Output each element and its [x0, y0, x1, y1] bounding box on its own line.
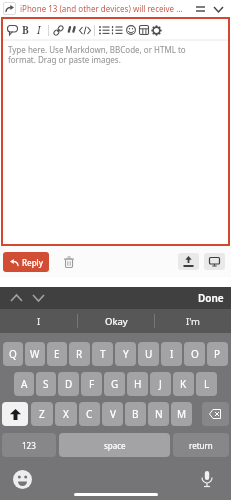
button[interactable]: G — [104, 372, 125, 396]
staticText: U — [145, 347, 153, 361]
staticText: M — [177, 407, 187, 421]
button[interactable]: Reply — [3, 252, 49, 272]
staticText: Type here. Use Markdown, BBCode, or HTML… — [8, 44, 186, 66]
button[interactable]: L — [196, 372, 217, 396]
staticText: F — [89, 377, 95, 391]
button[interactable]: O — [184, 342, 205, 366]
staticText: I — [170, 347, 174, 361]
staticText: Z — [39, 407, 45, 421]
staticText: Q — [9, 347, 17, 361]
button[interactable]: M — [171, 402, 192, 426]
staticText: S — [43, 377, 49, 391]
staticText: T — [100, 347, 106, 361]
button[interactable]: return — [173, 433, 229, 457]
button[interactable]: H — [127, 372, 148, 396]
button[interactable]: Okay — [78, 309, 154, 333]
staticText: B — [132, 407, 139, 421]
button[interactable]: J — [150, 372, 171, 396]
staticText: J — [159, 377, 162, 391]
staticText: R — [76, 347, 83, 361]
button[interactable]: Y — [115, 342, 136, 366]
button[interactable]: X — [55, 402, 77, 426]
button[interactable] — [78, 22, 91, 38]
staticText: D — [65, 377, 73, 391]
button[interactable]: F — [81, 372, 102, 396]
staticText: G — [111, 377, 119, 391]
button[interactable] — [6, 22, 19, 38]
button[interactable] — [204, 253, 225, 270]
button[interactable] — [31, 291, 45, 305]
staticText: 123 — [22, 440, 36, 451]
staticText: space — [104, 440, 126, 451]
button[interactable] — [9, 291, 23, 305]
staticText: Reply — [22, 257, 43, 268]
button[interactable]: Done — [198, 291, 224, 305]
button[interactable] — [12, 469, 32, 489]
button[interactable] — [211, 2, 225, 16]
button[interactable] — [197, 469, 217, 489]
button[interactable]: I — [0, 309, 77, 333]
button[interactable]: V — [102, 402, 123, 426]
staticText: iPhone 13 (and other devices) will recei… — [20, 3, 193, 14]
button[interactable]: S — [36, 372, 56, 396]
button[interactable]: Z — [31, 402, 53, 426]
button[interactable]: U — [138, 342, 159, 366]
button[interactable]: N — [148, 402, 169, 426]
button[interactable]: P — [207, 342, 228, 366]
button[interactable]: W — [25, 342, 45, 366]
staticText: I'm — [186, 315, 200, 328]
button[interactable] — [137, 22, 150, 38]
button[interactable]: space — [59, 433, 170, 457]
button[interactable]: Q — [3, 342, 23, 366]
button[interactable] — [202, 402, 229, 426]
button[interactable]: I — [32, 22, 45, 38]
button[interactable] — [52, 22, 65, 38]
button[interactable] — [178, 253, 199, 270]
staticText: Y — [123, 347, 129, 361]
button[interactable]: E — [47, 342, 67, 366]
staticText: Done — [198, 291, 224, 305]
button[interactable]: B — [125, 402, 146, 426]
staticText: A — [21, 377, 28, 391]
button[interactable]: I — [161, 342, 182, 366]
button[interactable] — [2, 402, 28, 426]
button[interactable]: T — [92, 342, 113, 366]
button[interactable] — [62, 255, 76, 269]
staticText: I — [37, 315, 41, 328]
staticText: H — [134, 377, 142, 391]
staticText: B — [22, 23, 29, 37]
button[interactable]: A — [14, 372, 34, 396]
staticText: P — [214, 347, 221, 361]
staticText: O — [191, 347, 199, 361]
staticText: I — [37, 23, 41, 37]
button[interactable] — [193, 2, 207, 16]
button[interactable] — [98, 22, 111, 38]
staticText: V — [110, 407, 116, 421]
staticText: K — [180, 377, 187, 391]
button[interactable]: B — [19, 22, 32, 38]
button[interactable] — [111, 22, 124, 38]
staticText: Okay — [105, 315, 128, 328]
button[interactable] — [3, 2, 16, 15]
button[interactable]: D — [58, 372, 79, 396]
button[interactable]: I'm — [155, 309, 231, 333]
staticText: L — [204, 377, 210, 391]
button[interactable]: C — [79, 402, 100, 426]
staticText: E — [54, 347, 60, 361]
button[interactable] — [150, 22, 163, 38]
button[interactable]: 123 — [2, 433, 56, 457]
button[interactable]: K — [173, 372, 194, 396]
button[interactable]: R — [69, 342, 90, 366]
staticText: X — [63, 407, 69, 421]
staticText: W — [30, 347, 40, 361]
button[interactable] — [65, 22, 78, 38]
staticText: C — [86, 407, 93, 421]
staticText: return — [189, 440, 213, 451]
button[interactable] — [124, 22, 137, 38]
staticText: N — [155, 407, 163, 421]
